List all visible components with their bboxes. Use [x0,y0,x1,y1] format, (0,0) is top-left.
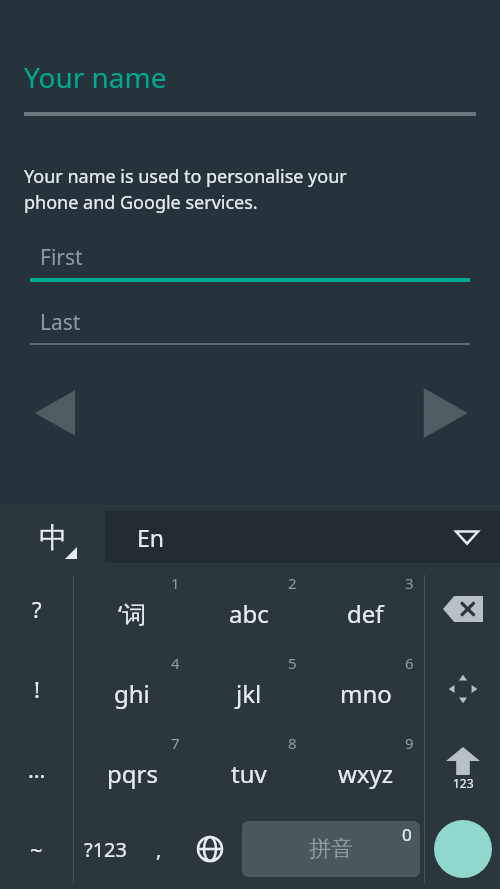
button[interactable]: 1 [74,569,190,649]
staticText: 拼音 [309,835,353,863]
staticText: 4 [171,653,180,673]
staticText: Your name is used to personalise your ph… [24,164,347,215]
staticText: wxyz [338,757,394,790]
button[interactable]: Next [410,383,470,443]
button[interactable]: Enter [425,809,500,889]
button[interactable]: ~ [0,809,73,889]
button[interactable]: En [105,511,500,563]
staticText: ‘词 [118,597,147,630]
staticText: 6 [405,653,414,673]
staticText: 8 [288,733,297,753]
staticText: abc [229,597,269,630]
button[interactable]: Switch language [0,505,105,569]
button[interactable]: Previous [30,383,90,443]
button[interactable]: 5 [190,649,307,729]
button[interactable]: 6 [307,649,424,729]
button[interactable]: 拼音 [242,821,420,877]
staticText: ? [32,594,42,624]
staticText: Last [40,308,81,337]
button[interactable]: Backspace [425,569,500,649]
staticText: ~ [30,834,43,864]
staticText: 0 [402,823,412,846]
staticText: Your name [24,58,167,96]
button[interactable]: … [0,729,73,809]
button[interactable]: Last [30,308,470,345]
button[interactable]: Shift numbers [425,729,500,809]
staticText: 1 [171,573,180,593]
staticText: 9 [405,733,414,753]
staticText: ?123 [84,836,127,863]
staticText: En [137,522,165,553]
button[interactable]: 4 [74,649,190,729]
staticText: pqrs [107,757,158,790]
staticText: jkl [236,677,262,710]
button[interactable]: First [30,243,470,282]
staticText: tuv [231,757,267,790]
staticText: ghi [114,677,150,710]
button[interactable]: 8 [190,729,307,809]
button[interactable]: 2 [190,569,307,649]
button[interactable]: 7 [74,729,190,809]
staticText: ! [34,674,40,704]
staticText: First [40,243,83,272]
button[interactable]: ? [0,569,73,649]
button[interactable]: 3 [307,569,424,649]
staticText: 7 [171,733,180,753]
staticText: def [347,597,384,630]
button[interactable]: ?123 [74,809,136,889]
staticText: 5 [288,653,297,673]
button[interactable]: ! [0,649,73,729]
button[interactable]: Move cursor [425,649,500,729]
button[interactable]: 9 [307,729,424,809]
staticText: , [156,836,162,863]
staticText: mno [340,677,392,710]
staticText: 中 [39,520,67,555]
button[interactable]: , [136,809,182,889]
staticText: 123 [453,775,474,791]
staticText: 2 [288,573,297,593]
staticText: … [28,754,46,784]
staticText: 3 [405,573,414,593]
button[interactable]: Change keyboard [182,809,238,889]
